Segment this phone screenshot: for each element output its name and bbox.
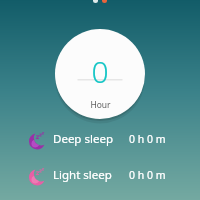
button[interactable]: Light sleep (0, 159, 200, 191)
button[interactable]: Deep sleep (0, 123, 200, 155)
staticText: Deep sleep (53, 131, 113, 147)
staticText: 0 h 0 m (129, 168, 166, 182)
staticText: 0 h 0 m (129, 132, 166, 146)
staticText: Hour (90, 99, 111, 111)
staticText: Light sleep (53, 167, 112, 183)
button[interactable]: Sleep duration dial (55, 29, 145, 119)
staticText: 0 (91, 51, 109, 92)
